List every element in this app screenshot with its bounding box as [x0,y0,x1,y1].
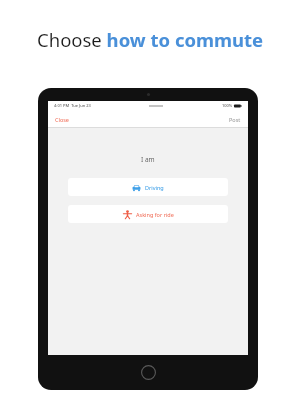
button[interactable]: Post [222,112,248,127]
staticText: I am [141,155,155,164]
button[interactable]: Close [48,112,76,127]
staticText: Post [229,116,241,123]
other: Driving [132,183,141,192]
staticText: Choose how to commute [37,27,264,52]
staticText: 4:01 PM Tue Jun 23 [54,103,91,108]
staticText: Driving [145,184,164,191]
staticText: Asking for ride [136,211,174,218]
other: Asking for ride [123,210,132,219]
staticText: 100% [222,103,233,108]
button[interactable]: Asking for ride [68,205,228,223]
button[interactable]: Driving [68,178,228,196]
staticText: Close [55,116,69,123]
